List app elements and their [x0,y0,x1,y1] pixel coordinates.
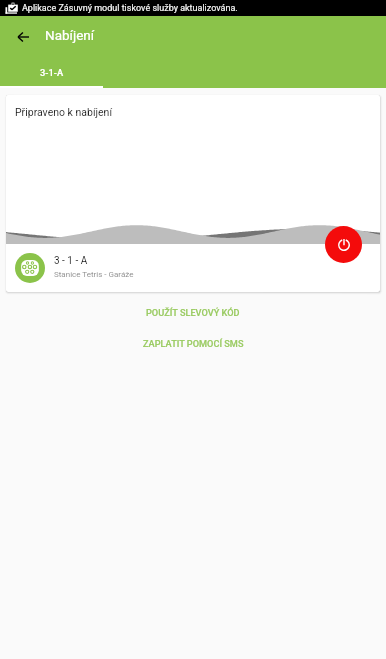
button[interactable]: 3 - 1 - A [6,244,380,292]
staticText: Aplikace Zásuvný modul tiskové služby ak… [22,3,238,14]
staticText: POUŽÍT SLEVOVÝ KÓD [146,307,240,318]
staticText: 3-1-A [40,67,64,78]
staticText: ZAPLATIT POMOCÍ SMS [143,338,244,349]
staticText: Nabíjení [45,27,95,43]
button[interactable]: Back [0,16,42,58]
staticText: Připraveno k nabíjení [15,106,113,118]
button[interactable]: ZAPLATIT POMOCÍ SMS [127,334,260,353]
staticText: 3 - 1 - A [54,255,88,267]
staticText: Stanice Tetris - Garáže [54,270,134,279]
button[interactable]: 3-1-A [0,58,103,88]
button[interactable]: POUŽÍT SLEVOVÝ KÓD [130,303,256,322]
button[interactable]: Stop charging [325,226,362,263]
